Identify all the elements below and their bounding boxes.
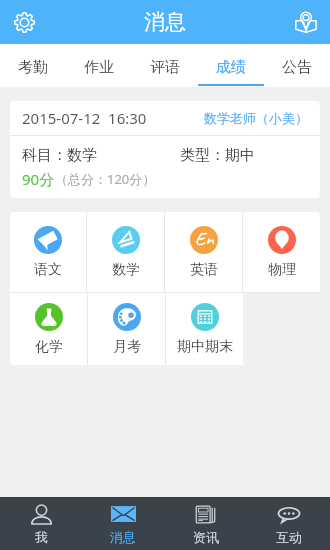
button[interactable]: 考勤: [0, 44, 66, 87]
staticText: 语文: [34, 261, 62, 279]
staticText: 数学: [112, 261, 140, 279]
staticText: 月考: [113, 338, 141, 356]
staticText: 资讯: [193, 529, 219, 545]
staticText: 公告: [282, 58, 312, 77]
staticText: 化学: [35, 338, 63, 356]
button[interactable]: 公告: [264, 44, 330, 87]
button[interactable]: 资讯: [164, 497, 247, 550]
staticText: 90分: [22, 169, 55, 189]
button[interactable]: Settings: [6, 4, 42, 40]
button[interactable]: 我: [0, 497, 82, 550]
button[interactable]: 月考: [88, 293, 165, 365]
button[interactable]: 评语: [132, 44, 198, 87]
button[interactable]: 化学: [10, 293, 87, 365]
staticText: （总分：120分）: [55, 170, 156, 188]
staticText: 评语: [150, 58, 180, 77]
button[interactable]: Map: [288, 4, 324, 40]
button[interactable]: 语文: [10, 212, 86, 292]
staticText: 成绩: [216, 58, 246, 77]
button[interactable]: 作业: [66, 44, 132, 87]
button[interactable]: 互动: [247, 497, 330, 550]
staticText: 消息: [110, 529, 136, 545]
button[interactable]: 物理: [243, 212, 320, 292]
staticText: 消息: [144, 9, 186, 35]
staticText: 类型：期中: [180, 146, 255, 165]
staticText: En: [195, 227, 214, 251]
button[interactable]: 成绩: [198, 44, 264, 87]
staticText: 互动: [276, 529, 302, 545]
staticText: 我: [35, 529, 48, 545]
button[interactable]: 消息: [82, 497, 164, 550]
button[interactable]: 数学: [87, 212, 164, 292]
button[interactable]: En: [165, 212, 242, 292]
staticText: 2015-07-12 16:30: [22, 108, 147, 128]
staticText: 英语: [190, 261, 218, 279]
staticText: 数学老师（小美）: [204, 110, 308, 126]
button[interactable]: 期中期末: [166, 293, 243, 365]
staticText: 科目：数学: [22, 146, 97, 165]
staticText: 物理: [268, 261, 296, 279]
staticText: 期中期末: [177, 338, 233, 356]
button[interactable]: 2015-07-12 16:30: [10, 101, 320, 198]
staticText: 考勤: [18, 58, 48, 77]
staticText: 作业: [84, 58, 114, 77]
